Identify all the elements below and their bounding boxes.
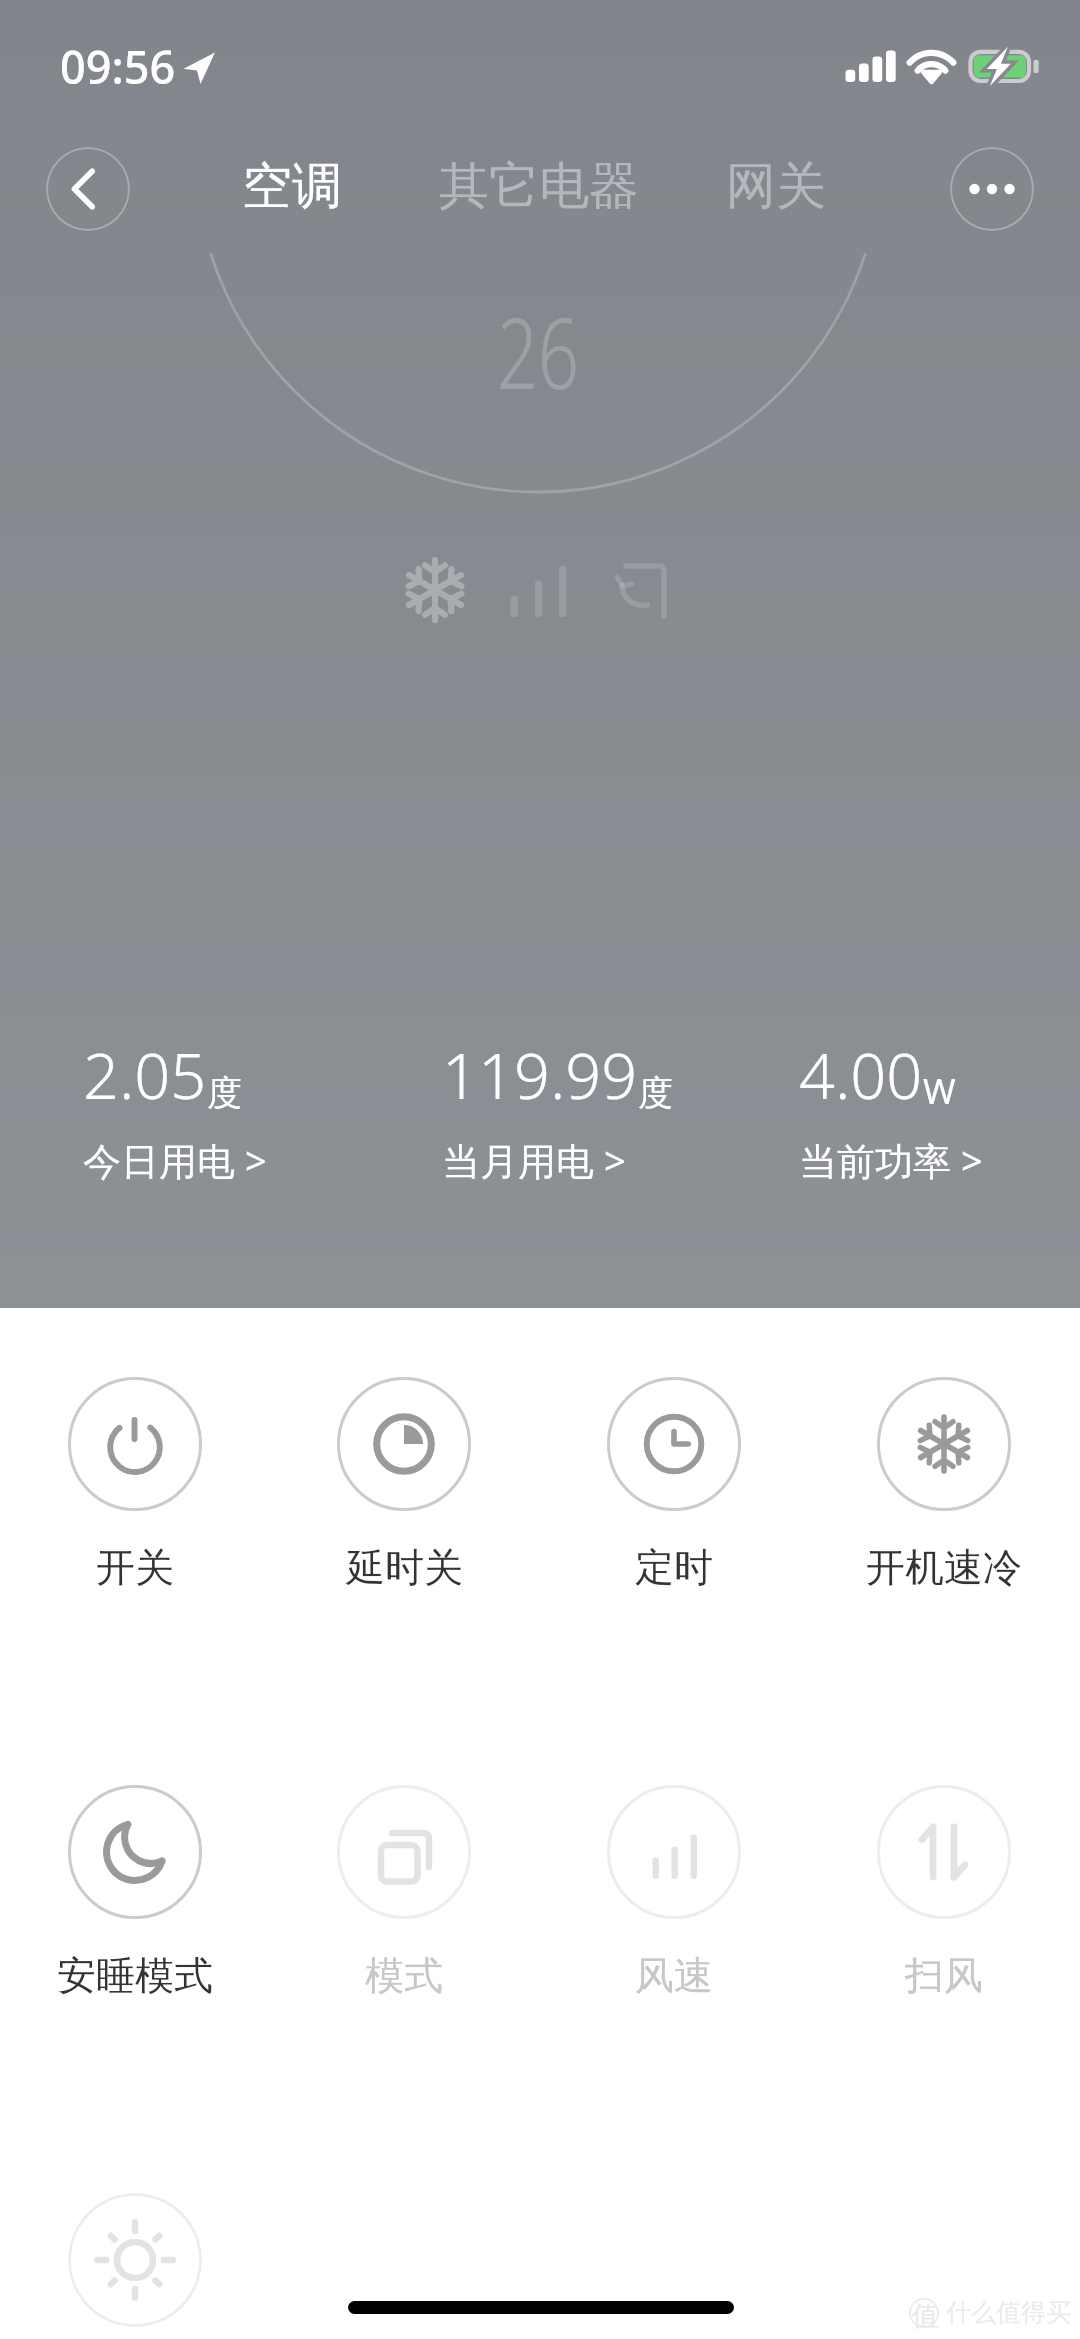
staticText: 当月用电 > <box>442 1134 626 1186</box>
staticText: 当前功率 > <box>799 1134 983 1186</box>
staticText: 开关 <box>96 1543 174 1592</box>
button[interactable]: 安睡模式 <box>5 1785 265 2000</box>
button[interactable]: 扫风 <box>814 1785 1074 2000</box>
staticText: 09:56 <box>60 36 176 97</box>
button[interactable]: 空调 <box>222 147 362 231</box>
button[interactable]: Back <box>46 147 130 231</box>
button[interactable]: 网关 <box>706 147 846 231</box>
button[interactable]: Brightness <box>68 2193 202 2327</box>
staticText: 其它电器 <box>439 155 639 218</box>
staticText: 定时 <box>635 1543 713 1592</box>
button[interactable]: 4.00 <box>799 1032 983 1186</box>
staticText: 119.99 <box>442 1032 638 1118</box>
button[interactable]: 其它电器 <box>419 147 659 231</box>
button[interactable]: 开机速冷 <box>814 1377 1074 1592</box>
staticText: 26 <box>465 285 610 417</box>
staticText: 今日用电 > <box>83 1134 267 1186</box>
button[interactable]: 119.99 <box>442 1032 673 1186</box>
staticText: 值 <box>912 2299 939 2333</box>
staticText: 安睡模式 <box>57 1951 213 2000</box>
staticText: 开机速冷 <box>866 1543 1022 1592</box>
staticText: 模式 <box>365 1951 443 2000</box>
button[interactable]: 定时 <box>544 1377 804 1592</box>
staticText: 2.05 <box>83 1032 207 1118</box>
staticText: W <box>923 1067 956 1115</box>
button[interactable]: 开关 <box>5 1377 265 1592</box>
button[interactable]: More options <box>950 147 1034 231</box>
staticText: 度 <box>638 1071 673 1115</box>
button[interactable]: 风速 <box>544 1785 804 2000</box>
staticText: 延时关 <box>346 1543 463 1592</box>
staticText: 网关 <box>726 155 826 218</box>
staticText: 扫风 <box>905 1951 983 2000</box>
button[interactable]: 模式 <box>274 1785 534 2000</box>
staticText: 度 <box>207 1071 242 1115</box>
button[interactable]: 延时关 <box>274 1377 534 1592</box>
button[interactable]: 2.05 <box>83 1032 267 1186</box>
staticText: 4.00 <box>799 1032 923 1118</box>
staticText: 什么值得买 <box>946 2297 1071 2328</box>
staticText: 空调 <box>242 155 342 218</box>
staticText: 风速 <box>635 1951 713 2000</box>
